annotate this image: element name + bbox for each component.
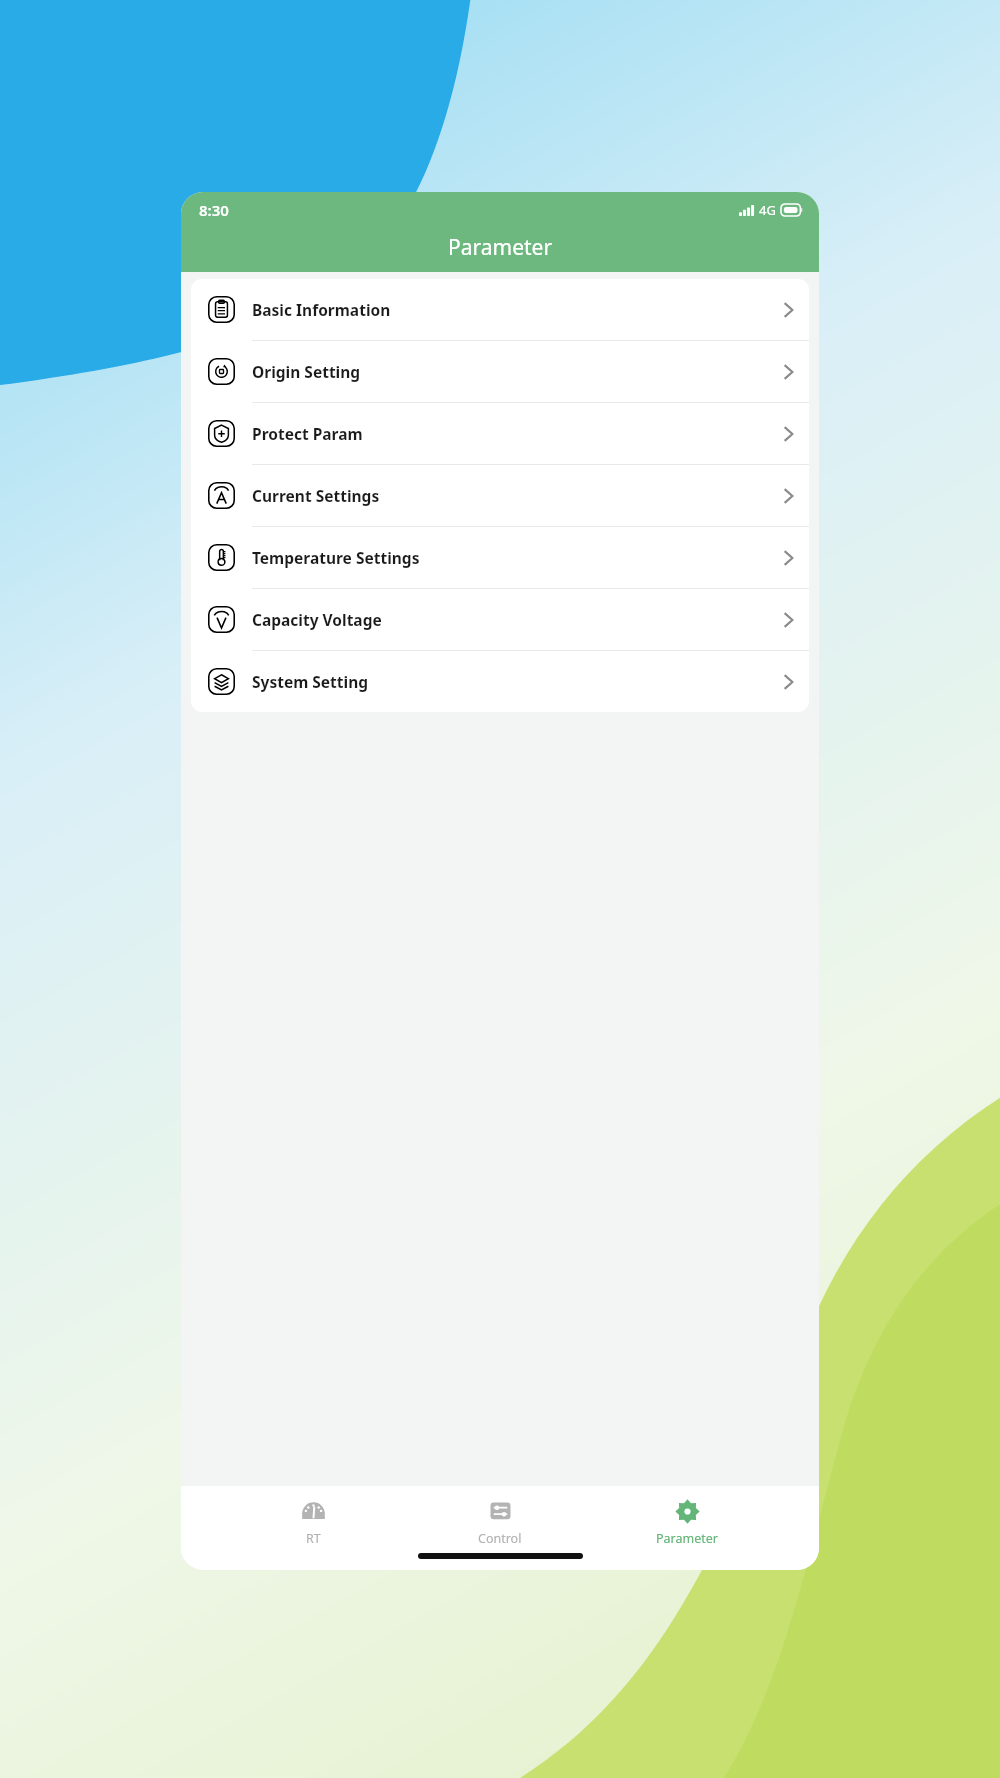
staticText: Control [478, 1530, 522, 1547]
button[interactable]: Temperature Settings [191, 527, 809, 589]
button[interactable]: Control [445, 1496, 555, 1549]
staticText: Temperature Settings [252, 547, 420, 568]
staticText: Protect Param [252, 423, 363, 444]
button[interactable]: Protect Param [191, 403, 809, 465]
button[interactable]: System Setting [191, 651, 809, 712]
staticText: Parameter [448, 233, 553, 262]
staticText: System Setting [252, 671, 369, 692]
staticText: RT [306, 1530, 321, 1547]
staticText: 4G [759, 201, 776, 219]
staticText: Capacity Voltage [252, 609, 382, 630]
staticText: Current Settings [252, 485, 380, 506]
staticText: Parameter [656, 1530, 718, 1547]
button[interactable]: RT [258, 1496, 368, 1549]
staticText: Origin Setting [252, 361, 361, 382]
staticText: Basic Information [252, 299, 391, 320]
button[interactable]: Origin Setting [191, 341, 809, 403]
staticText: 8:30 [199, 200, 229, 220]
button[interactable]: Current Settings [191, 465, 809, 527]
button[interactable]: Parameter [632, 1496, 742, 1549]
button[interactable]: Basic Information [191, 279, 809, 341]
button[interactable]: Capacity Voltage [191, 589, 809, 651]
